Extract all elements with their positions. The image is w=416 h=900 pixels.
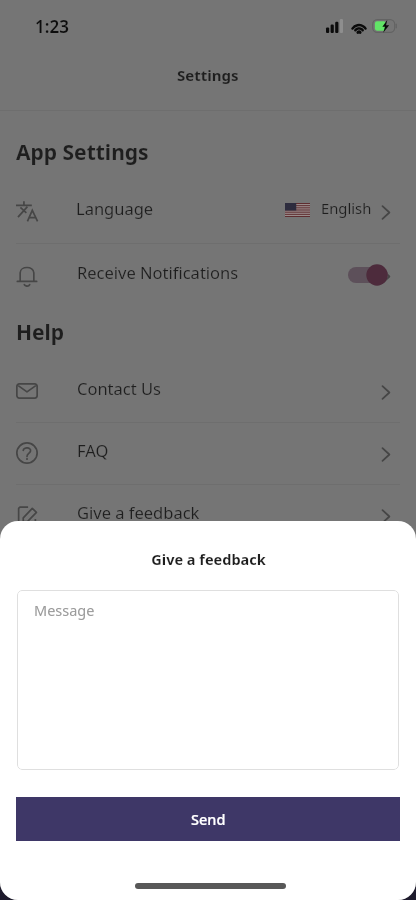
button[interactable]: Send	[16, 797, 400, 841]
button[interactable]: Give a feedback	[0, 484, 416, 546]
button[interactable]: FAQ	[0, 422, 416, 484]
staticText: App Settings	[16, 138, 149, 167]
button[interactable]: Receive Notifications	[0, 244, 416, 306]
button[interactable]: Contact Us	[0, 360, 416, 422]
staticText: Help	[16, 318, 65, 347]
staticText: Contact Us	[77, 377, 161, 399]
staticText: Send	[191, 809, 226, 829]
button[interactable]	[0, 180, 416, 242]
button[interactable]: Message	[17, 590, 399, 770]
staticText: Settings	[177, 65, 239, 85]
staticText: Give a feedback	[151, 549, 266, 569]
staticText: English	[321, 198, 372, 218]
button[interactable]: Receive notifications toggle	[346, 261, 392, 289]
staticText: Language	[76, 197, 154, 219]
staticText: Message	[34, 600, 95, 620]
staticText: FAQ	[77, 439, 109, 461]
staticText: 1:23	[35, 15, 69, 38]
staticText: Give a feedback	[77, 501, 200, 523]
staticText: Receive Notifications	[77, 261, 239, 283]
